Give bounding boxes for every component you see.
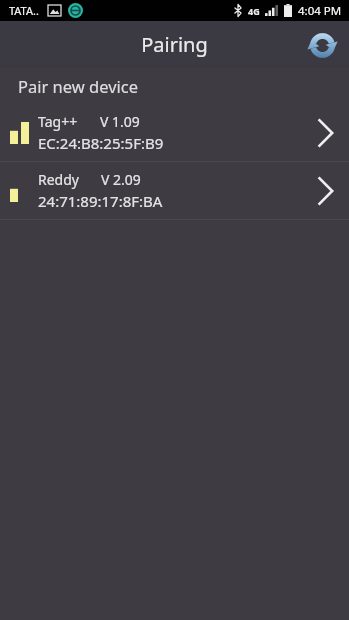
button[interactable]: Open Tag++ — [301, 104, 349, 161]
button[interactable]: Open Reddy — [301, 162, 349, 219]
button[interactable]: Reddy — [0, 162, 349, 219]
staticText: Pair new device — [18, 75, 139, 97]
staticText: 24:71:89:17:8F:BA — [38, 191, 163, 211]
staticText: V 1.09 — [100, 112, 140, 131]
staticText: TATA.. — [9, 3, 39, 18]
staticText: 4G — [248, 5, 260, 17]
staticText: Reddy — [38, 170, 79, 189]
staticText: EC:24:B8:25:5F:B9 — [38, 133, 164, 153]
staticText: Pairing — [0, 31, 349, 58]
staticText: Tag++ — [38, 112, 78, 131]
button[interactable]: Refresh — [301, 24, 343, 66]
staticText: 4:04 PM — [298, 3, 342, 19]
button[interactable]: Tag++ — [0, 104, 349, 161]
staticText: V 2.09 — [101, 170, 141, 189]
button[interactable]: Pair new device — [0, 68, 349, 104]
